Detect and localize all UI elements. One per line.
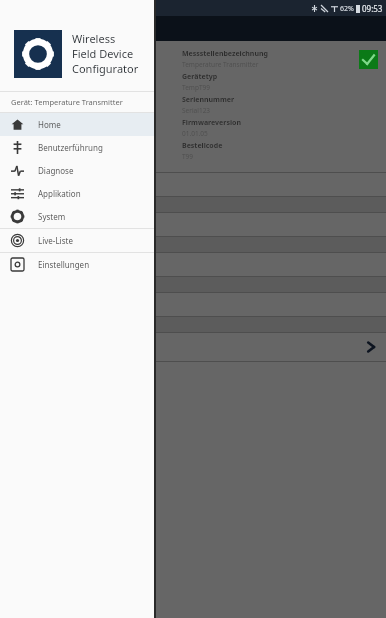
staticText: Benutzerführung	[38, 142, 103, 153]
button[interactable]: Benutzerführung	[0, 136, 154, 159]
other: Weiter	[364, 340, 378, 354]
staticText: T99	[182, 152, 194, 161]
button[interactable]: Live-Liste	[0, 229, 154, 252]
staticText: Messstellenbezeichnung	[182, 49, 268, 59]
staticText: System	[38, 211, 66, 222]
button[interactable]: Einstellungen	[0, 253, 154, 276]
button[interactable]: Applikation	[0, 182, 154, 205]
staticText: 01.01.05	[182, 129, 208, 138]
button[interactable]: Diagnose	[0, 159, 154, 182]
button[interactable]: Weiter	[0, 333, 386, 361]
staticText: Seriennummer	[182, 95, 235, 105]
staticText: Bestellcode	[182, 141, 223, 151]
staticText: Configurator	[72, 61, 139, 76]
staticText: 09:53	[362, 3, 383, 14]
staticText: Serial123	[182, 106, 211, 115]
staticText: Firmwareversion	[182, 118, 241, 128]
staticText: TempT99	[182, 83, 210, 92]
staticText: Live-Liste	[38, 235, 73, 246]
staticText: 62%	[340, 4, 354, 14]
staticText: Gerät: Temperature Transmitter	[11, 97, 123, 107]
button[interactable]: Home	[0, 113, 154, 136]
staticText: Field Device	[72, 46, 134, 61]
button[interactable]: Status OK	[359, 50, 378, 69]
staticText: Einstellungen	[38, 259, 90, 270]
staticText: Wireless	[72, 31, 116, 46]
button[interactable]: System	[0, 205, 154, 228]
staticText: Diagnose	[38, 165, 74, 176]
staticText: Temperature Transmitter	[182, 60, 259, 69]
staticText: Home	[38, 119, 61, 130]
staticText: Applikation	[38, 188, 81, 199]
staticText: Gerätetyp	[182, 72, 218, 82]
